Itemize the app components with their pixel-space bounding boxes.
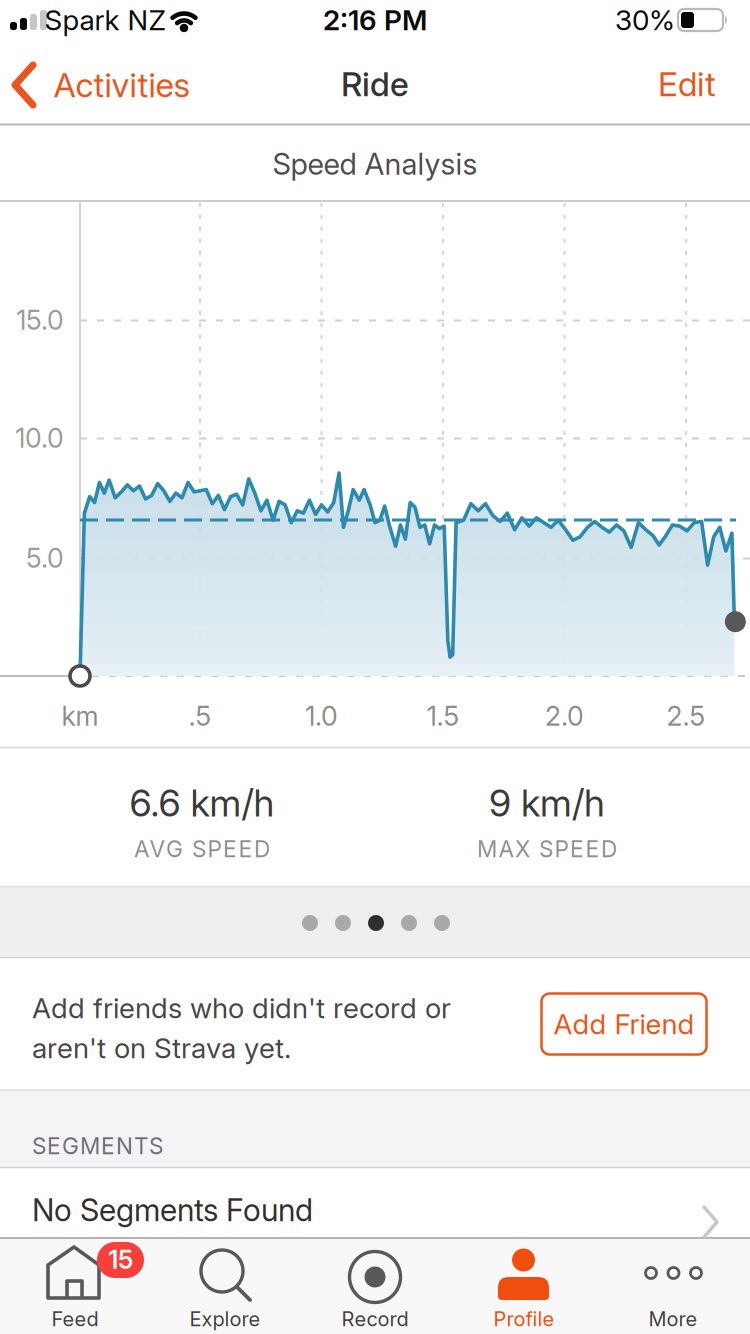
staticText: Feed <box>51 1307 98 1331</box>
staticText: 10.0 <box>15 422 64 454</box>
staticText: 6.6 km/h <box>129 781 274 825</box>
button[interactable]: Edit <box>632 39 742 129</box>
button[interactable]: Add Friend <box>540 992 708 1056</box>
staticText: SEGMENTS <box>32 1133 163 1159</box>
button[interactable]: Activities <box>0 39 210 129</box>
button[interactable]: More <box>598 1238 748 1334</box>
staticText: Profile <box>493 1307 554 1331</box>
button[interactable]: No Segments Found <box>0 1168 750 1238</box>
staticText: MAX SPEED <box>477 836 617 862</box>
staticText: 1.5 <box>426 700 459 732</box>
button[interactable]: Explore <box>150 1238 300 1334</box>
staticText: 15.0 <box>16 304 64 336</box>
staticText: AVG SPEED <box>134 836 270 862</box>
staticText: No Segments Found <box>32 1192 313 1228</box>
staticText: 30% <box>615 3 675 36</box>
staticText: Spark NZ <box>44 3 165 36</box>
staticText: Explore <box>189 1307 260 1331</box>
staticText: Edit <box>658 64 716 104</box>
staticText: More <box>648 1307 697 1331</box>
staticText: Add friends who didn't record or <box>32 991 451 1024</box>
staticText: 5.0 <box>26 542 64 574</box>
staticText: km <box>61 700 98 732</box>
staticText: 9 km/h <box>489 781 605 825</box>
staticText: Add Friend <box>553 1007 694 1040</box>
staticText: Ride <box>341 64 409 104</box>
staticText: 2.5 <box>666 700 705 732</box>
button[interactable]: 15 <box>0 1238 150 1334</box>
staticText: Record <box>341 1307 408 1331</box>
button[interactable]: Record <box>300 1238 450 1334</box>
staticText: 15 <box>108 1245 133 1274</box>
staticText: 2.0 <box>545 700 584 732</box>
staticText: .5 <box>188 700 211 732</box>
button[interactable]: Profile <box>449 1238 599 1334</box>
staticText: aren't on Strava yet. <box>32 1031 291 1064</box>
staticText: 1.0 <box>305 700 338 732</box>
staticText: Speed Analysis <box>272 147 477 181</box>
staticText: 2:16 PM <box>323 3 427 36</box>
staticText: Activities <box>53 65 190 105</box>
